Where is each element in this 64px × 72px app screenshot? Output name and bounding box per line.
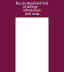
staticText: Your personalized hub — [15, 2, 48, 5]
staticText: of college information — [23, 5, 41, 12]
staticText: and news — [25, 12, 39, 16]
